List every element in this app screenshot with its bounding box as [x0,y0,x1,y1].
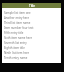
staticText: Seventh list entry [4,41,27,45]
button[interactable]: Item number four text [2,25,61,30]
staticText: Fifth entry title [4,31,24,35]
button[interactable]: Third list item name [2,20,61,25]
staticText: Sample list item one [4,11,31,15]
button[interactable]: Sixth item name here [2,35,61,40]
button[interactable]: Tenth entry name [2,55,61,60]
staticText: Another entry here [4,16,30,20]
staticText: Eighth item title [4,46,25,50]
staticText: Item number four text [4,26,34,30]
button[interactable]: Fifth entry title [2,30,61,35]
button[interactable]: Eighth item title [2,45,61,50]
staticText: Sixth item name here [4,36,33,40]
staticText: Title [29,4,35,8]
button[interactable]: Another entry here [2,15,61,20]
button[interactable]: Title [2,3,61,8]
button[interactable]: Seventh list entry [2,40,61,45]
button[interactable]: Ninth list item here [2,50,61,55]
staticText: Ninth list item here [4,51,30,55]
staticText: Tenth entry name [4,56,28,60]
button[interactable]: Sample list item one [2,10,61,15]
staticText: Third list item name [4,21,31,25]
